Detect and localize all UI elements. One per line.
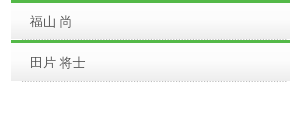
button[interactable]: 福山 尚 xyxy=(11,3,290,39)
staticText: 田片 将士 xyxy=(30,53,86,71)
button[interactable]: 田片 将士 xyxy=(11,43,290,81)
other: Name list xyxy=(0,0,300,134)
staticText: 福山 尚 xyxy=(30,12,73,30)
